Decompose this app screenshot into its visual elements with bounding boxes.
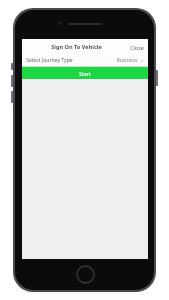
staticText: Sign On To Vehicle bbox=[51, 43, 102, 51]
button[interactable]: Start bbox=[22, 67, 148, 79]
staticText: Select Journey Type bbox=[26, 57, 73, 64]
staticText: Close bbox=[130, 44, 144, 51]
button[interactable]: Close bbox=[126, 41, 148, 54]
staticText: Business bbox=[116, 57, 138, 64]
button[interactable]: Select Journey Type bbox=[22, 55, 148, 66]
other: Home bbox=[76, 265, 95, 284]
staticText: Start bbox=[79, 70, 91, 77]
